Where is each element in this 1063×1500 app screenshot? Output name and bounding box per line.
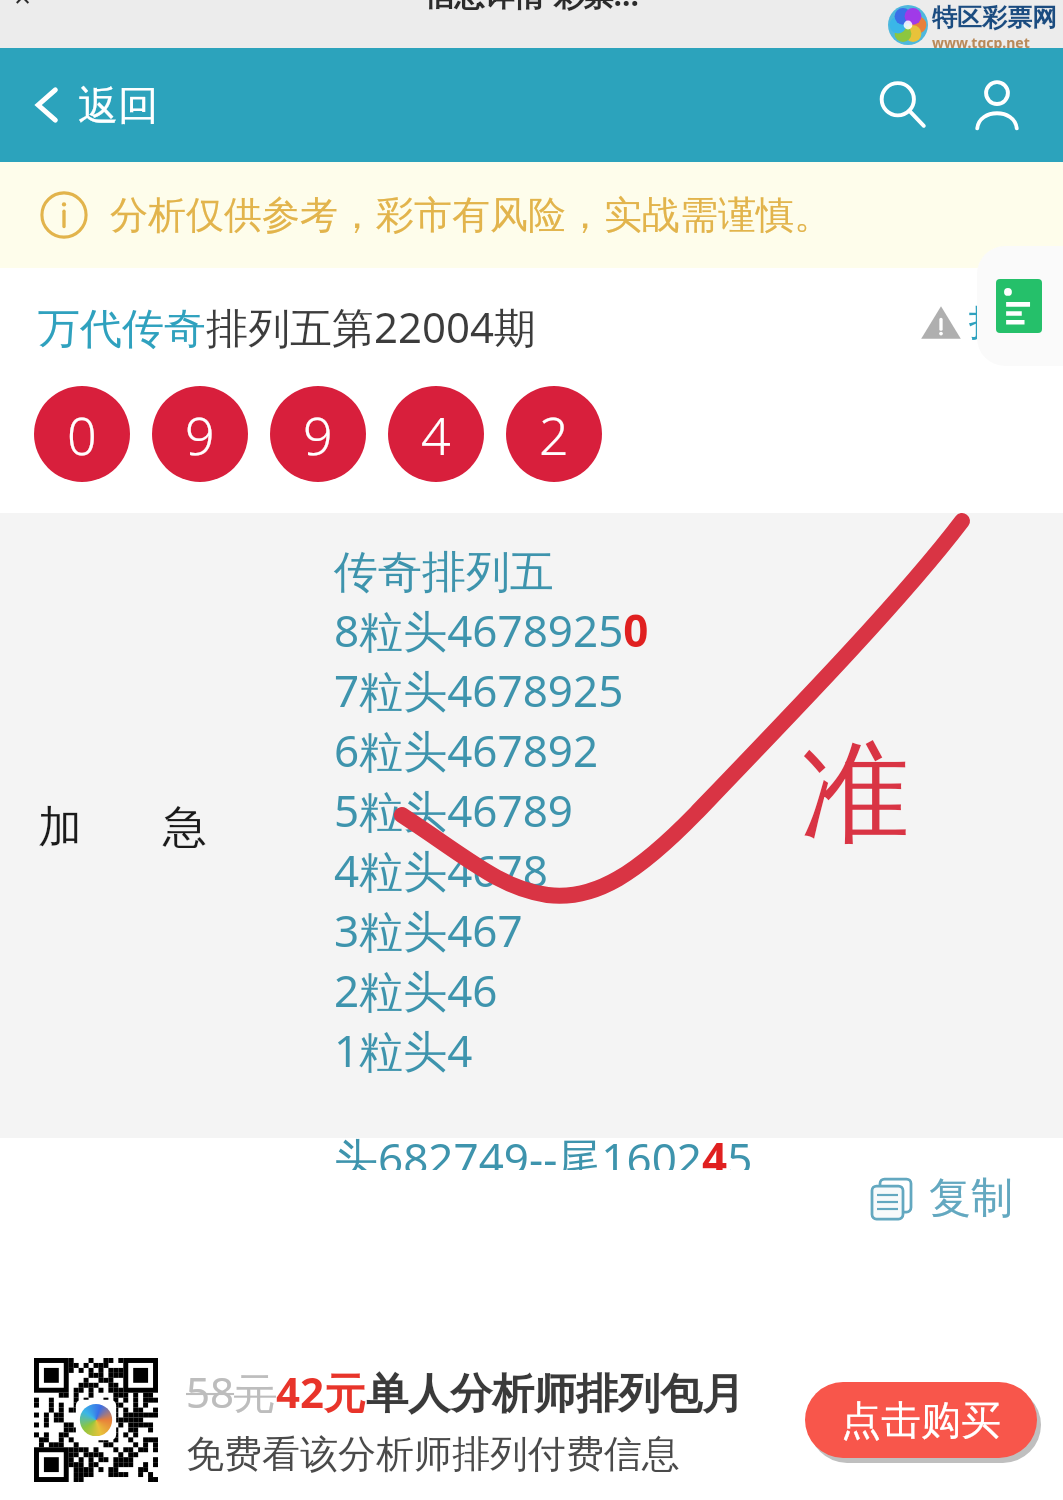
staticText: 5粒头46789 [334,780,574,840]
button[interactable]: Account [959,67,1035,143]
staticText: 0 [67,399,97,470]
staticText: 58元42元单人分析师排列包月 [186,1363,745,1420]
button[interactable]: 点击购买 [805,1382,1037,1458]
button[interactable]: 投诉 [915,296,1045,349]
staticText: 分析仅供参考，彩市有风险，实战需谨慎。 [110,191,832,239]
staticText: 复制 [929,1172,1013,1225]
staticText: 准 [800,725,910,864]
staticText: 8粒头46789250 [334,600,649,660]
button[interactable]: Notes widget [977,246,1063,366]
staticText: 加 [38,800,82,855]
button[interactable]: Search [865,67,941,143]
button[interactable]: 复制 [857,1162,1023,1235]
staticText: 4 [421,399,451,470]
staticText: 传奇排列五 [334,545,554,600]
staticText: 免费看该分析师排列付费信息 [186,1430,680,1478]
staticText: 特区彩票网 [932,2,1057,33]
staticText: 头682749--尾160245 [334,1128,753,1170]
staticText: 返回 [78,80,158,130]
staticText: 7粒头4678925 [334,660,624,720]
staticText: 1粒头4 [334,1020,473,1080]
staticText: 投诉 [969,300,1041,345]
staticText: 急 [163,800,207,855]
staticText: 4粒头4678 [334,840,548,900]
staticText: 9 [185,399,215,470]
staticText: 6粒头467892 [334,720,599,780]
staticText: 信息详情-彩票... [424,0,639,15]
staticText: 2粒头46 [334,960,498,1020]
staticText: 2 [539,399,569,470]
button[interactable]: 返回 [0,72,178,138]
staticText: 万代传奇排列五第22004期 [38,298,537,355]
staticText: × [14,0,32,17]
staticText: 3粒头467 [334,900,523,960]
staticText: 9 [303,399,333,470]
staticText: www.tqcp.net [932,33,1030,48]
staticText: 点击购买 [841,1395,1001,1445]
